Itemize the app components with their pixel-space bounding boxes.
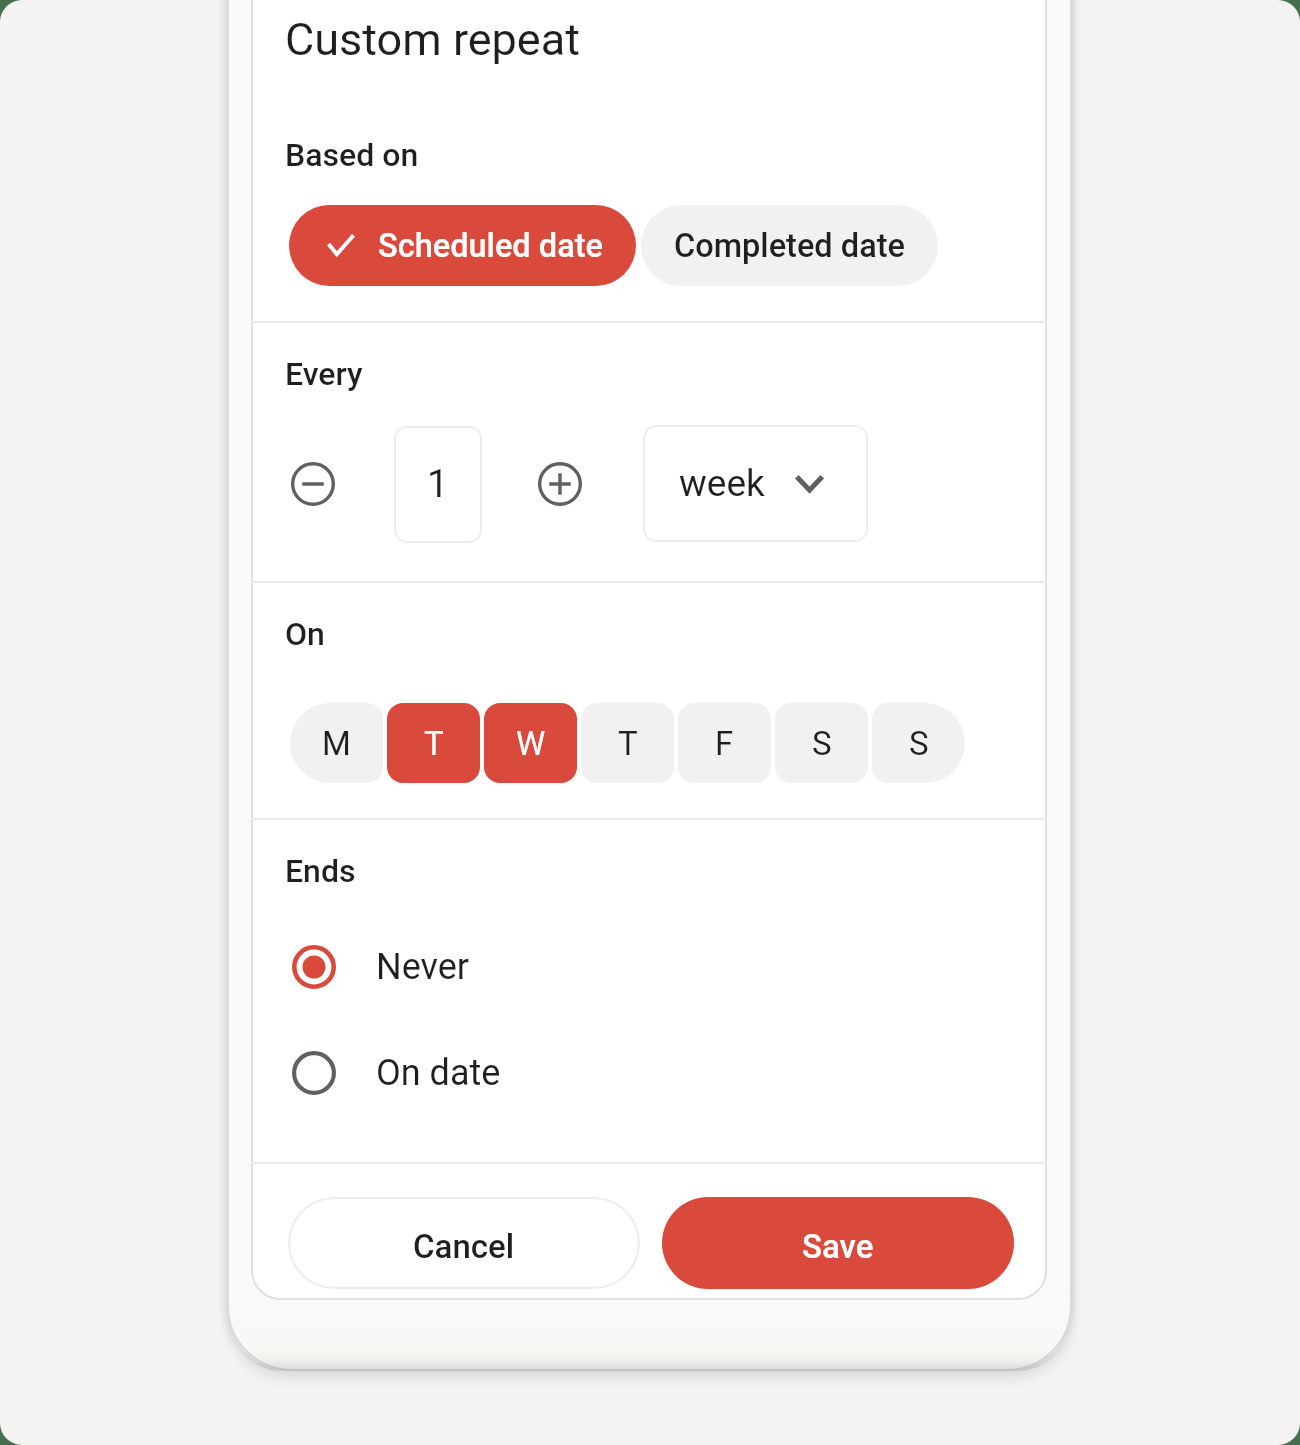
button[interactable]: M <box>290 703 383 783</box>
staticText: Every <box>285 355 363 393</box>
button[interactable]: week <box>643 425 868 542</box>
staticText: Ends <box>285 852 356 890</box>
button[interactable]: S <box>872 703 965 783</box>
button[interactable]: T <box>581 703 674 783</box>
staticText: M <box>322 724 351 763</box>
button[interactable]: F <box>678 703 771 783</box>
button[interactable]: Cancel <box>288 1197 640 1289</box>
button[interactable]: S <box>775 703 868 783</box>
button[interactable]: Scheduled date <box>289 205 636 286</box>
staticText: S <box>909 724 929 763</box>
staticText: W <box>516 724 546 763</box>
staticText: Scheduled date <box>378 227 603 265</box>
staticText: Never <box>376 946 470 988</box>
staticText: Cancel <box>413 1227 515 1266</box>
staticText: T <box>618 724 638 763</box>
staticText: T <box>424 724 444 763</box>
staticText: week <box>679 462 765 505</box>
button[interactable]: On date <box>251 1029 1047 1117</box>
staticText: Based on <box>285 136 419 174</box>
button[interactable]: Completed date <box>641 205 938 286</box>
staticText: On <box>285 615 325 653</box>
button[interactable]: W <box>484 703 577 783</box>
staticText: S <box>812 724 832 763</box>
staticText: On date <box>376 1052 501 1094</box>
button[interactable]: T <box>387 703 480 783</box>
staticText: Completed date <box>674 227 906 265</box>
staticText: Custom repeat <box>285 13 580 66</box>
staticText: F <box>715 724 734 763</box>
button[interactable]: Save <box>662 1197 1014 1289</box>
button[interactable]: Never <box>251 923 1047 1011</box>
button[interactable]: 1 <box>394 426 482 543</box>
staticText: 1 <box>427 462 449 507</box>
button[interactable]: Increase <box>530 454 590 514</box>
staticText: Save <box>802 1227 874 1266</box>
button[interactable]: Decrease <box>283 454 343 514</box>
